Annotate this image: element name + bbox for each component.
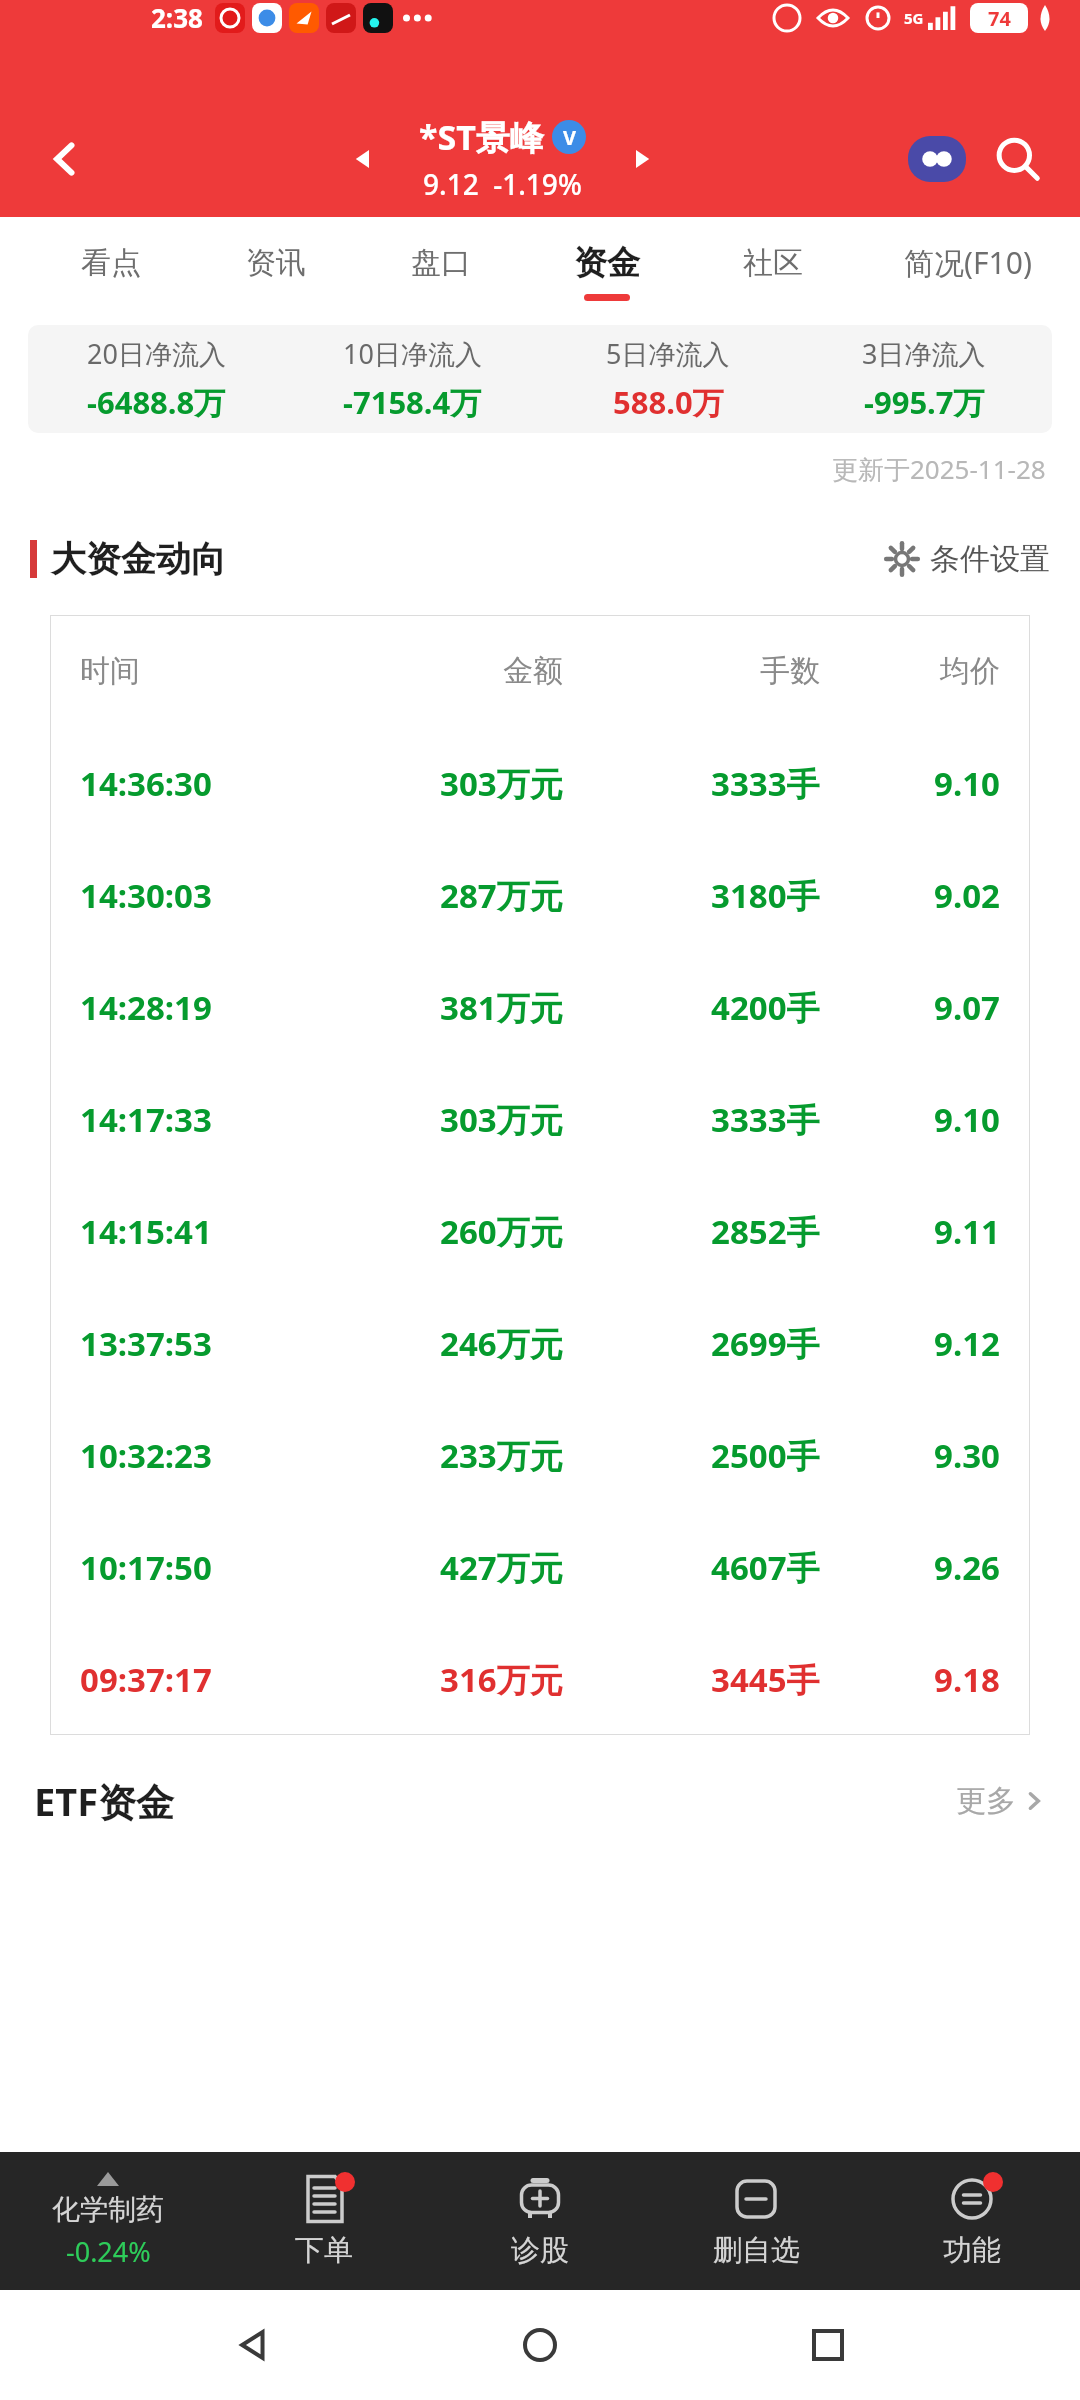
- staticText: -7158.4万: [343, 381, 482, 423]
- button[interactable]: 13:37:53: [50, 1287, 1030, 1399]
- button[interactable]: 更多: [956, 1782, 1046, 1820]
- staticText: 10日净流入: [343, 335, 482, 372]
- staticText: 9.30: [934, 1433, 1000, 1478]
- staticText: 260万元: [440, 1209, 563, 1254]
- staticText: 303万元: [440, 761, 563, 806]
- staticText: -995.7万: [864, 381, 985, 423]
- staticText: 看点: [81, 244, 141, 282]
- staticText: V: [563, 124, 576, 151]
- button[interactable]: 10日净流入: [284, 335, 540, 423]
- staticText: 14:36:30: [80, 761, 212, 806]
- staticText: 588.0万: [613, 381, 724, 423]
- button[interactable]: Back: [218, 2310, 288, 2380]
- staticText: 3333手: [711, 761, 820, 806]
- button[interactable]: 社区: [690, 217, 856, 325]
- staticText: 下单: [295, 2232, 353, 2269]
- staticText: 14:30:03: [80, 873, 212, 918]
- staticText: 功能: [943, 2232, 1001, 2269]
- staticText: 10:17:50: [80, 1545, 212, 1590]
- staticText: 9.11: [934, 1209, 1000, 1254]
- button[interactable]: 3日净流入: [796, 335, 1052, 423]
- staticText: 233万元: [440, 1433, 563, 1478]
- button[interactable]: Search: [986, 127, 1050, 191]
- staticText: 3445手: [711, 1657, 820, 1702]
- staticText: -6488.8万: [87, 381, 226, 423]
- button[interactable]: 14:36:30: [50, 727, 1030, 839]
- button[interactable]: 09:37:17: [50, 1623, 1030, 1735]
- staticText: 社区: [743, 244, 803, 282]
- staticText: 更多: [956, 1782, 1016, 1820]
- staticText: 09:37:17: [80, 1657, 212, 1702]
- button[interactable]: 时间: [50, 615, 1030, 727]
- staticText: *ST景峰: [419, 114, 544, 160]
- staticText: 381万元: [440, 985, 563, 1030]
- staticText: 20日净流入: [87, 335, 226, 372]
- staticText: 9.10: [934, 1097, 1000, 1142]
- staticText: 9.12: [934, 1321, 1000, 1366]
- button[interactable]: 功能: [864, 2152, 1080, 2290]
- staticText: 9.26: [934, 1545, 1000, 1590]
- staticText: 14:17:33: [80, 1097, 212, 1142]
- button[interactable]: 14:28:19: [50, 951, 1030, 1063]
- staticText: 手数: [760, 652, 820, 690]
- button[interactable]: 删自选: [648, 2152, 864, 2290]
- button[interactable]: 5日净流入: [540, 335, 796, 423]
- staticText: 2852手: [711, 1209, 820, 1254]
- button[interactable]: 资讯: [193, 217, 358, 325]
- staticText: 条件设置: [930, 540, 1050, 578]
- staticText: 9.02: [934, 873, 1000, 918]
- button[interactable]: Next stock: [614, 131, 670, 187]
- staticText: 287万元: [440, 873, 563, 918]
- staticText: -0.24%: [66, 2233, 151, 2270]
- button[interactable]: 简况(F10): [856, 217, 1080, 325]
- button[interactable]: 下单: [216, 2152, 432, 2290]
- staticText: 9.07: [934, 985, 1000, 1030]
- staticText: 3日净流入: [862, 335, 986, 372]
- button[interactable]: 20日净流入: [28, 335, 284, 423]
- staticText: 删自选: [713, 2232, 800, 2269]
- button[interactable]: 资金: [524, 217, 690, 325]
- staticText: 时间: [80, 652, 140, 690]
- staticText: 9.12 -1.19%: [423, 165, 582, 203]
- staticText: 资讯: [246, 244, 306, 282]
- button[interactable]: Previous stock: [335, 131, 391, 187]
- button[interactable]: 14:17:33: [50, 1063, 1030, 1175]
- staticText: 14:15:41: [80, 1209, 212, 1254]
- staticText: 诊股: [511, 2232, 569, 2269]
- button[interactable]: 10:32:23: [50, 1399, 1030, 1511]
- staticText: 4607手: [711, 1545, 820, 1590]
- staticText: 3180手: [711, 873, 820, 918]
- staticText: 更新于2025-11-28: [832, 451, 1046, 487]
- staticText: ETF资金: [34, 1775, 175, 1827]
- button[interactable]: *ST景峰: [419, 114, 586, 203]
- staticText: 316万元: [440, 1657, 563, 1702]
- staticText: 5G: [904, 8, 924, 28]
- button[interactable]: 10:17:50: [50, 1511, 1030, 1623]
- staticText: 化学制药: [52, 2192, 164, 2227]
- button[interactable]: 条件设置: [884, 540, 1050, 578]
- staticText: 3333手: [711, 1097, 820, 1142]
- staticText: 9.18: [934, 1657, 1000, 1702]
- button[interactable]: 化学制药: [0, 2152, 216, 2290]
- button[interactable]: Back: [30, 124, 100, 194]
- staticText: 246万元: [440, 1321, 563, 1366]
- staticText: 14:28:19: [80, 985, 212, 1030]
- button[interactable]: Assistant: [906, 128, 968, 190]
- staticText: 2:38: [151, 0, 203, 35]
- staticText: 13:37:53: [80, 1321, 212, 1366]
- button[interactable]: 盘口: [358, 217, 524, 325]
- staticText: 4200手: [711, 985, 820, 1030]
- staticText: 均价: [940, 652, 1000, 690]
- button[interactable]: 看点: [28, 217, 193, 325]
- staticText: 74: [988, 5, 1011, 32]
- button[interactable]: 诊股: [432, 2152, 648, 2290]
- button[interactable]: Recents: [793, 2310, 863, 2380]
- staticText: 金额: [503, 652, 563, 690]
- staticText: 简况(F10): [904, 242, 1032, 283]
- button[interactable]: 14:15:41: [50, 1175, 1030, 1287]
- staticText: 资金: [574, 242, 640, 284]
- staticText: 10:32:23: [80, 1433, 212, 1478]
- button[interactable]: Home: [505, 2310, 575, 2380]
- staticText: 303万元: [440, 1097, 563, 1142]
- button[interactable]: 14:30:03: [50, 839, 1030, 951]
